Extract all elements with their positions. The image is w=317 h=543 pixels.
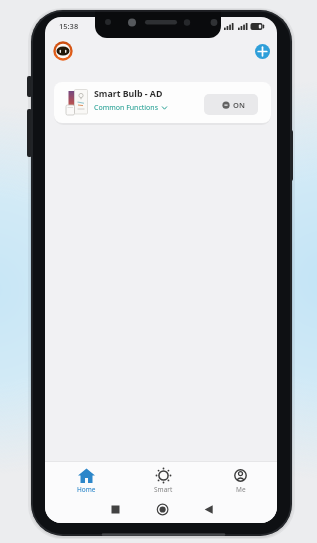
staticText: ON [233,100,245,110]
staticText: Smart Bulb - AD [94,88,163,100]
staticText: Me [236,485,246,494]
button[interactable]: Smart Bulb - AD [54,82,271,123]
staticText: Home [77,485,96,494]
staticText: Smart [154,485,173,494]
staticText: Common Functions [94,103,159,113]
staticText: 15:38 [59,21,79,31]
button[interactable]: Home [47,461,125,494]
button[interactable]: Smart [125,461,202,494]
button[interactable]: ON [204,94,258,115]
button[interactable] [255,44,270,59]
button[interactable]: Me [202,461,277,494]
button[interactable] [53,41,73,61]
